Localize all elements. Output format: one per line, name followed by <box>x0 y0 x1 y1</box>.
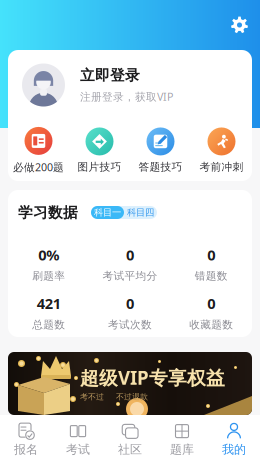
button[interactable]: 题库 <box>156 415 208 464</box>
staticText: 总题数 <box>32 318 65 331</box>
staticText: 必做200题 <box>13 160 64 174</box>
button[interactable]: 考前冲刺 <box>191 124 252 176</box>
button[interactable]: 科目四 <box>124 206 157 219</box>
staticText: 0 <box>126 294 134 313</box>
staticText: 0 <box>126 245 134 264</box>
staticText: 超级VIP专享权益 <box>80 365 225 390</box>
staticText: 考前冲刺 <box>199 160 243 173</box>
staticText: 答题技巧 <box>138 160 182 173</box>
staticText: 我的 <box>222 442 246 457</box>
button[interactable]: 超级VIP专享权益 <box>8 352 252 415</box>
staticText: 注册登录，获取VIP <box>80 89 173 104</box>
button[interactable]: 社区 <box>104 415 156 464</box>
staticText: 社区 <box>118 442 142 457</box>
staticText: 考不过 <box>80 392 104 402</box>
staticText: 题库 <box>170 442 194 457</box>
button[interactable]: 立即登录 <box>8 50 252 120</box>
staticText: 科目一 <box>94 207 121 218</box>
button[interactable]: 必做200题 <box>8 124 69 176</box>
button[interactable]: 设置 <box>225 10 254 39</box>
staticText: 收藏题数 <box>189 318 233 331</box>
staticText: 科目四 <box>127 207 154 218</box>
staticText: 报名 <box>14 442 38 457</box>
button[interactable]: 我的 <box>208 415 260 464</box>
button[interactable]: 考试 <box>52 415 104 464</box>
button[interactable]: 科目一 <box>91 206 124 219</box>
staticText: 考试 <box>66 442 90 457</box>
staticText: 不过退款 <box>116 392 148 402</box>
staticText: 图片技巧 <box>77 160 121 173</box>
button[interactable]: 答题技巧 <box>130 124 191 176</box>
staticText: 考试平均分 <box>102 269 157 283</box>
staticText: 考试次数 <box>108 318 152 331</box>
staticText: 立即登录 <box>80 66 140 84</box>
staticText: 0% <box>38 245 59 264</box>
staticText: 错题数 <box>195 269 228 283</box>
button[interactable]: 报名 <box>0 415 52 464</box>
button[interactable]: 图片技巧 <box>69 124 130 176</box>
staticText: 0 <box>207 294 215 313</box>
staticText: 学习数据 <box>18 203 78 221</box>
staticText: 刷题率 <box>32 269 65 283</box>
staticText: 421 <box>37 294 61 313</box>
staticText: 0 <box>207 245 215 264</box>
